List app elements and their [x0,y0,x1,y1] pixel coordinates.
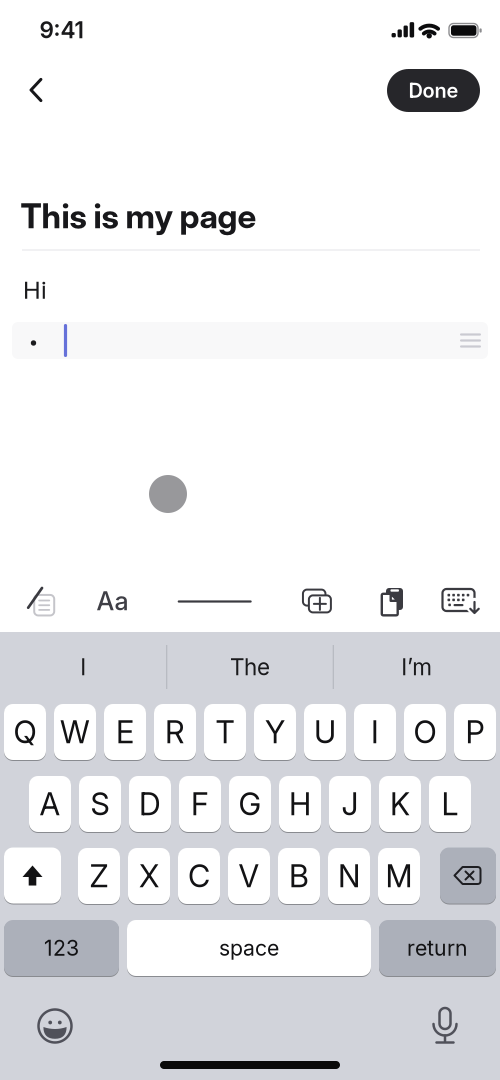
button[interactable]: Y [254,703,296,760]
staticText: return [407,935,468,961]
button[interactable]: J [329,775,371,832]
button[interactable]: A [29,775,71,832]
staticText: Hi [23,276,47,304]
button[interactable]: Back [14,68,58,112]
staticText: Aa [96,586,128,616]
button[interactable]: X [128,847,170,904]
button[interactable]: Shift [4,847,61,904]
staticText: G [238,786,261,822]
staticText: J [341,786,358,822]
staticText: The [230,654,270,680]
button[interactable]: I’m [337,642,497,692]
staticText: 9:41 [39,17,83,43]
staticText: M [385,858,412,894]
button[interactable]: space [127,919,371,976]
button[interactable]: Paste [372,579,412,623]
staticText: X [139,858,159,894]
button[interactable]: The [170,642,330,692]
button[interactable]: P [454,703,496,760]
staticText: V [238,858,259,894]
staticText: O [413,714,436,750]
button[interactable]: Delete [440,847,496,904]
staticText: T [215,714,234,750]
staticText: Q [13,714,36,750]
staticText: space [219,935,279,961]
staticText: N [338,858,360,894]
button[interactable]: Done [387,69,480,112]
staticText: A [39,786,60,822]
button[interactable]: B [278,847,320,904]
button[interactable]: G [229,775,271,832]
button[interactable]: 123 [4,919,119,976]
staticText: Y [265,714,285,750]
staticText: C [188,858,210,894]
staticText: P [465,714,484,750]
staticText: W [60,714,90,750]
staticText: S [90,786,109,822]
button[interactable]: E [104,703,146,760]
staticText: Z [89,858,108,894]
button[interactable]: T [204,703,246,760]
staticText: K [390,786,410,822]
staticText: 123 [44,935,79,961]
staticText: I [80,654,86,680]
button[interactable]: Reorder block [455,326,485,355]
staticText: R [165,714,185,750]
button[interactable]: Z [78,847,120,904]
button[interactable]: H [279,775,321,832]
button[interactable]: Add divider [178,578,252,624]
button[interactable]: U [304,703,346,760]
button[interactable]: Q [4,703,46,760]
button[interactable]: return [379,919,496,976]
button[interactable]: Dismiss keyboard [439,580,479,620]
staticText: I [371,714,379,750]
staticText: D [139,786,161,822]
button[interactable]: R [154,703,196,760]
staticText: L [441,786,458,822]
button[interactable]: K [379,775,421,832]
button[interactable]: C [178,847,220,904]
button[interactable]: Insert block [17,578,63,624]
button[interactable]: Add card [297,584,337,624]
staticText: F [191,786,209,822]
staticText: Done [408,79,458,102]
button[interactable]: I [354,703,396,760]
staticText: H [289,786,311,822]
button[interactable]: Text style [82,578,142,624]
button[interactable]: V [228,847,270,904]
button[interactable]: I [3,642,163,692]
button[interactable]: Emoji [33,1004,77,1048]
button[interactable]: F [179,775,221,832]
button[interactable]: Dictate [423,1003,467,1047]
button[interactable]: O [404,703,446,760]
staticText: I’m [401,654,432,680]
button[interactable]: N [328,847,370,904]
button[interactable]: S [79,775,121,832]
staticText: E [116,714,134,750]
staticText: B [289,858,309,894]
staticText: U [314,714,336,750]
staticText: This is my page [20,196,256,236]
button[interactable]: W [54,703,96,760]
button[interactable]: M [378,847,420,904]
button[interactable]: D [129,775,171,832]
button[interactable]: L [429,775,471,832]
